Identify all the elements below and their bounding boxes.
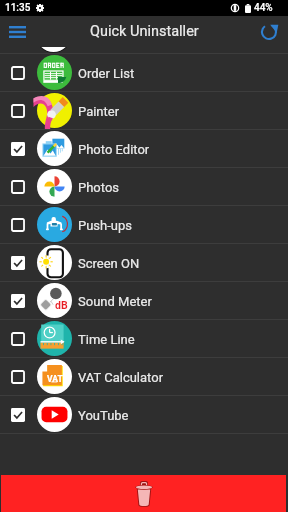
staticText: YouTube: [78, 408, 129, 423]
button[interactable]: Time Line: [0, 320, 288, 357]
button[interactable]: Painter: [0, 92, 288, 129]
button[interactable]: Refresh: [258, 21, 280, 43]
button[interactable]: Uninstall selected apps: [1, 475, 286, 512]
button[interactable]: Open navigation menu: [4, 19, 30, 45]
staticText: 44%: [254, 2, 273, 14]
staticText: Sound Meter: [78, 294, 152, 309]
staticText: Order List: [78, 66, 135, 81]
button[interactable]: dB: [0, 282, 288, 319]
button[interactable]: Order List: [0, 54, 288, 91]
staticText: VAT: [47, 374, 63, 384]
staticText: Screen ON: [78, 256, 140, 271]
staticText: Quick Uninstaller: [90, 23, 199, 40]
staticText: 11:35: [5, 2, 31, 14]
staticText: Photo Editor: [78, 142, 150, 157]
button[interactable]: YouTube: [0, 396, 288, 433]
staticText: VAT Calculator: [78, 370, 164, 385]
staticText: Time Line: [78, 332, 135, 347]
staticText: Push-ups: [78, 218, 133, 233]
button[interactable]: Photos: [0, 168, 288, 205]
button[interactable]: Push-ups: [0, 206, 288, 243]
button[interactable]: Photo Editor: [0, 130, 288, 167]
staticText: dB: [55, 299, 68, 311]
staticText: Photos: [78, 180, 120, 195]
staticText: Painter: [78, 104, 120, 119]
button[interactable]: VAT: [0, 358, 288, 395]
button[interactable]: Screen ON: [0, 244, 288, 281]
